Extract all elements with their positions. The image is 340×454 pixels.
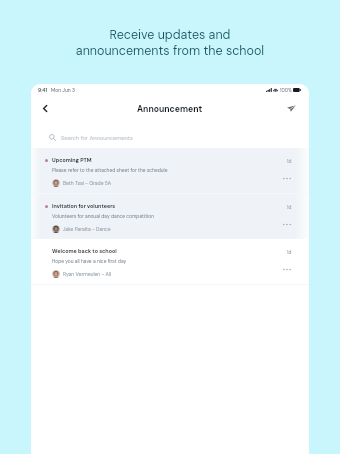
staticText: Welcome back to school [52, 248, 117, 255]
button[interactable]: More options [279, 218, 294, 231]
button[interactable]: Invitation for volunteers [31, 194, 309, 240]
staticText: Announcement [137, 103, 203, 114]
staticText: Mon Jun 3 [51, 87, 75, 94]
button[interactable]: More options [279, 172, 294, 185]
staticText: 1d [287, 249, 292, 255]
button[interactable]: More options [279, 263, 294, 276]
button[interactable]: Welcome back to school [31, 239, 309, 285]
button[interactable]: Back [37, 100, 53, 116]
staticText: Volunteers for annual day dance competit… [52, 213, 155, 219]
staticText: Please refer to the attached sheet for t… [52, 167, 168, 173]
staticText: Ryan Vermeulen - All [63, 271, 112, 278]
button[interactable]: Upcoming PTM [31, 148, 309, 194]
staticText: 100% [280, 87, 292, 93]
staticText: Search for Announcements [61, 134, 133, 141]
staticText: Jake Paralta - Dance [63, 226, 111, 233]
staticText: Beth Tsai - Grade 5A [63, 180, 112, 187]
staticText: 1d [287, 204, 292, 210]
staticText: Receive updates and announcements from t… [0, 27, 340, 59]
staticText: Invitation for volunteers [52, 203, 116, 210]
button[interactable]: Send announcement [283, 100, 299, 116]
staticText: 9:41 [38, 87, 48, 94]
staticText: Hope you all have a nice first day [52, 258, 127, 264]
staticText: Upcoming PTM [52, 157, 92, 164]
staticText: 1d [287, 158, 292, 164]
